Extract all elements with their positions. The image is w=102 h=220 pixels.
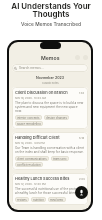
button[interactable]: conflict resolution <box>15 162 43 167</box>
button[interactable]: Record new memo <box>75 186 88 199</box>
button[interactable]: nutrition <box>31 197 46 202</box>
button[interactable]: Handling Difficult Client Conversations <box>12 132 88 170</box>
staticText: recipes <box>17 198 27 201</box>
staticText: meal prep <box>50 198 64 201</box>
staticText: The successful nutritional use of the pr… <box>15 187 85 195</box>
staticText: client communications <box>17 157 47 160</box>
staticText: AI Understands Your Thoughts <box>11 1 91 19</box>
staticText: Nov 16, 2023 · 4:05 PM <box>15 141 45 144</box>
button[interactable]: Sort memos <box>75 55 80 60</box>
staticText: 1:42 <box>79 91 85 94</box>
staticText: 5:18 <box>79 136 85 139</box>
button[interactable]: recipes <box>15 197 29 202</box>
staticText: Nov 18, 2023 · 10:24 AM <box>15 96 46 99</box>
staticText: interior concepts <box>17 116 40 119</box>
staticText: November 2023 <box>36 76 65 80</box>
staticText: 3 audio notes <box>42 81 59 84</box>
staticText: Handling Difficult Client Conversations <box>15 135 77 140</box>
button[interactable]: Profile <box>83 55 88 60</box>
staticText: Search memos... <box>19 66 44 70</box>
button[interactable]: space remodeling <box>15 121 43 126</box>
button[interactable]: meal prep <box>48 197 66 202</box>
staticText: design changes <box>46 116 67 119</box>
staticText: The plan to discuss the space is to buil… <box>15 101 85 113</box>
button[interactable]: team sync <box>51 156 69 161</box>
button[interactable]: interior concepts <box>15 115 42 120</box>
staticText: 2:04 <box>79 177 85 180</box>
staticText: Healthy Lunch Success Bites <box>15 176 77 181</box>
staticText: team sync <box>53 157 67 160</box>
staticText: Voice Memos Transcribed <box>21 21 81 27</box>
staticText: Our Team is handling conversation with a… <box>15 146 85 154</box>
staticText: space remodeling <box>17 122 41 125</box>
staticText: Memos <box>41 55 60 61</box>
button[interactable]: client communications <box>15 156 49 161</box>
staticText: conflict resolution <box>17 163 41 166</box>
button[interactable]: design changes <box>44 115 69 120</box>
button[interactable]: Client Discussion on Branch Design <box>12 87 88 129</box>
staticText: nutrition <box>33 198 44 201</box>
staticText: Nov 12, 2023 · 12:30 PM <box>15 182 46 185</box>
button[interactable]: Search memos... <box>12 64 88 72</box>
button[interactable]: Healthy Lunch Success Bites <box>12 173 88 205</box>
staticText: Client Discussion on Branch Design <box>15 90 77 95</box>
